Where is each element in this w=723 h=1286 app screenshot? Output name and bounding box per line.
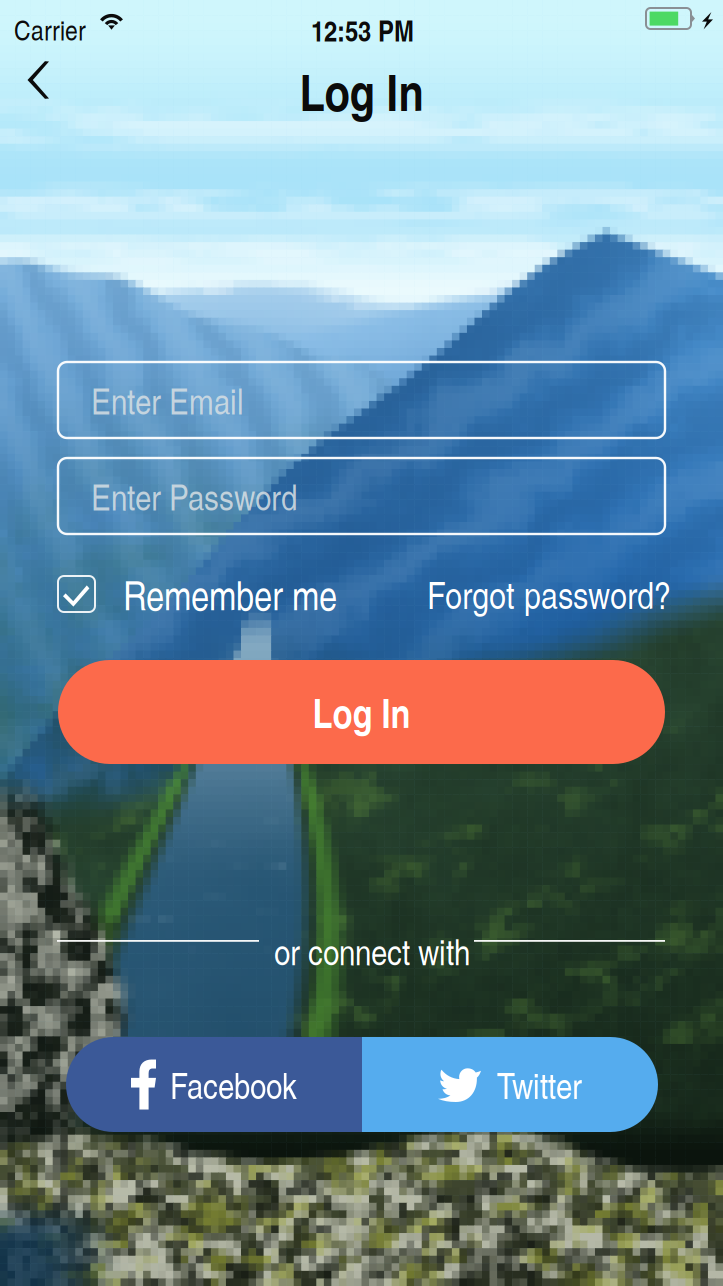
staticText: Enter Email	[91, 375, 244, 425]
staticText: 12:53 PM	[311, 9, 414, 50]
staticText: Facebook	[170, 1060, 297, 1109]
staticText: or connect with	[274, 926, 470, 975]
button[interactable]: Back	[0, 52, 72, 108]
staticText: Log In	[312, 684, 410, 740]
staticText: Forgot password?	[427, 568, 671, 620]
staticText: Carrier	[14, 10, 86, 48]
button[interactable]: Facebook	[66, 1037, 362, 1132]
button[interactable]: Twitter	[362, 1037, 658, 1132]
button[interactable]: Enter Password	[58, 458, 665, 534]
staticText: Remember me	[123, 567, 337, 621]
staticText: Enter Password	[91, 471, 297, 521]
button[interactable]: Enter Email	[58, 362, 665, 438]
staticText: Twitter	[497, 1060, 582, 1109]
button[interactable]: Remember me	[58, 574, 337, 614]
button[interactable]: Log In	[58, 660, 665, 764]
staticText: Log In	[299, 55, 423, 126]
button[interactable]: Forgot password?	[427, 574, 671, 614]
